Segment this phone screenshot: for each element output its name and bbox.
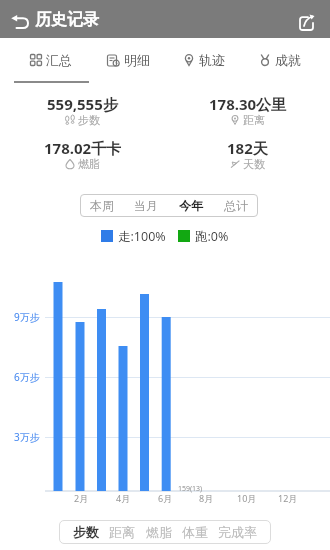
button[interactable]: 成就 [242, 38, 318, 81]
staticText: 明细 [124, 52, 150, 68]
staticText: 178.30公里 [209, 94, 287, 114]
staticText: 2月 [74, 492, 89, 504]
button[interactable]: 轨迹 [166, 38, 242, 81]
staticText: 182天 [227, 138, 268, 158]
staticText: 汇总 [46, 52, 72, 68]
staticText: 完成率 [218, 524, 257, 540]
staticText: 159(13) [178, 484, 203, 494]
staticText: 4月 [116, 492, 131, 504]
staticText: 本周 [90, 198, 114, 213]
staticText: 燃脂 [78, 157, 100, 171]
button[interactable] [4, 6, 36, 34]
button[interactable]: 距离 [109, 520, 135, 544]
staticText: 步数 [73, 524, 99, 540]
button[interactable] [292, 8, 322, 34]
staticText: 距离 [109, 524, 135, 540]
button[interactable]: 体重 [182, 520, 208, 544]
button[interactable]: 当月 [124, 194, 168, 217]
staticText: 559,555步 [47, 94, 118, 114]
button[interactable]: 今年 [168, 194, 213, 217]
staticText: 走:100% [118, 228, 166, 244]
staticText: 6月 [158, 492, 173, 504]
button[interactable]: 完成率 [218, 520, 257, 544]
staticText: 178.02千卡 [44, 138, 122, 158]
staticText: 9万步 [14, 310, 40, 324]
button[interactable]: 汇总 [13, 38, 89, 81]
staticText: 步数 [78, 113, 100, 127]
button[interactable]: 步数 [73, 520, 99, 544]
staticText: 历史记录 [35, 10, 99, 30]
staticText: 成就 [275, 52, 301, 68]
button[interactable]: 本周 [80, 194, 124, 217]
button[interactable]: 总计 [213, 194, 258, 217]
staticText: 总计 [224, 198, 248, 213]
button[interactable]: 明细 [90, 38, 166, 81]
staticText: 天数 [243, 157, 265, 171]
staticText: 当月 [134, 198, 158, 213]
staticText: 6万步 [14, 370, 40, 384]
staticText: 今年 [179, 198, 203, 213]
staticText: 12月 [278, 492, 298, 504]
staticText: 10月 [237, 492, 257, 504]
button[interactable]: 燃脂 [146, 520, 172, 544]
staticText: 距离 [243, 113, 265, 127]
staticText: 燃脂 [146, 524, 172, 540]
staticText: 8月 [199, 492, 214, 504]
staticText: 3万步 [14, 430, 40, 444]
staticText: 轨迹 [199, 52, 225, 68]
staticText: 跑:0% [195, 228, 229, 244]
staticText: 体重 [182, 524, 208, 540]
